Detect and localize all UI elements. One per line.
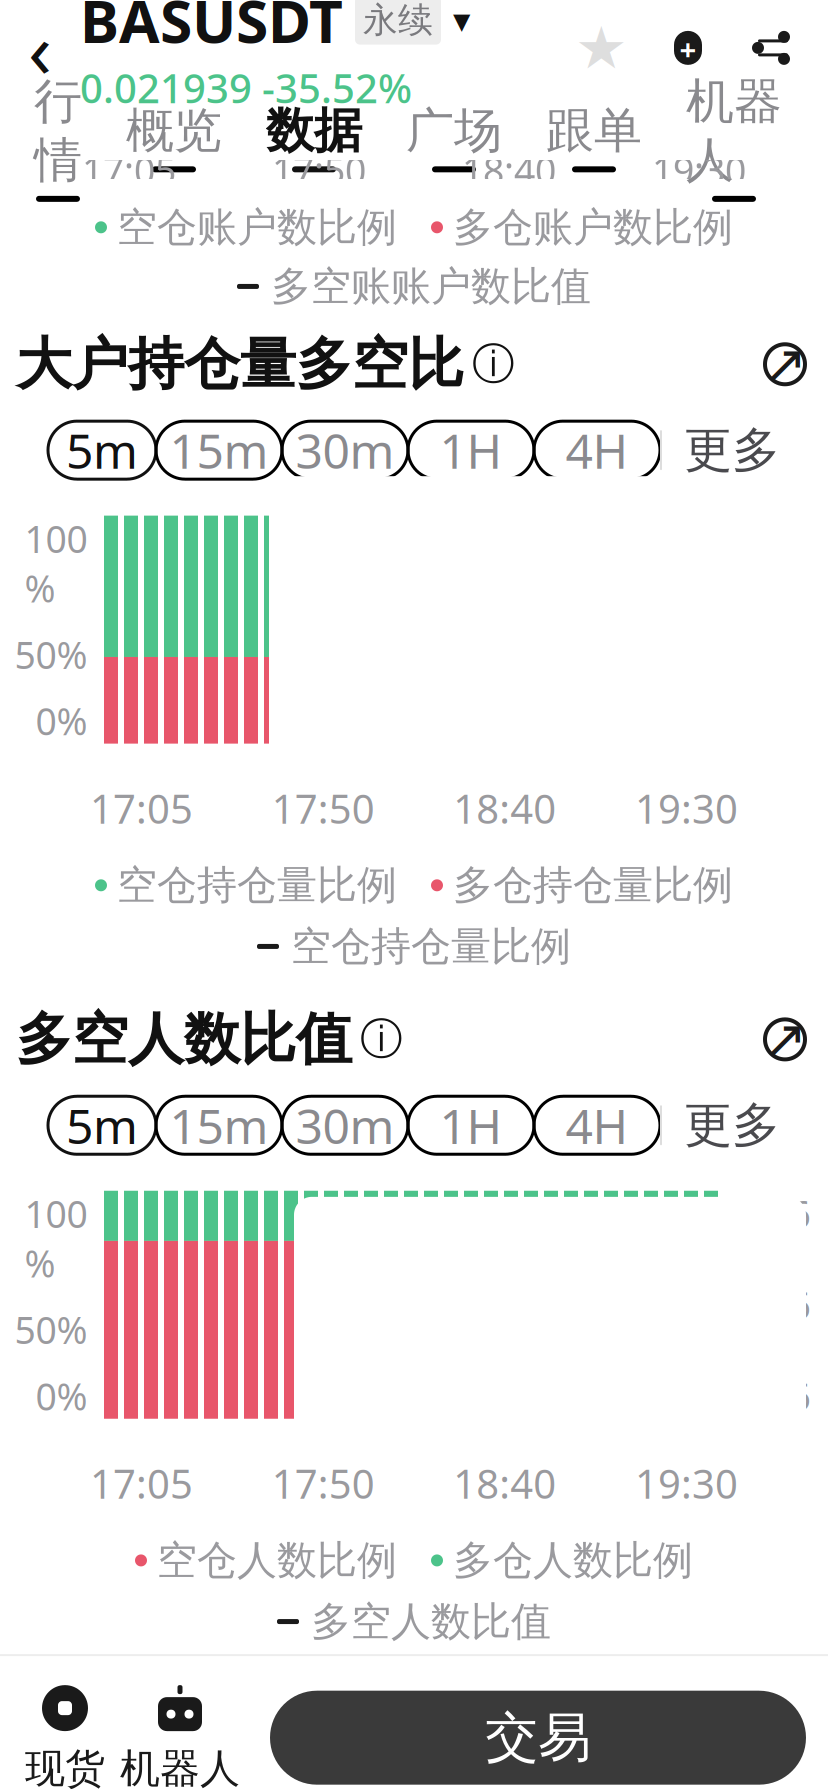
button[interactable]: Share (748, 25, 794, 71)
staticText: 17:50 (272, 145, 366, 195)
staticText: 数据 (266, 101, 362, 160)
staticText: 广场 (406, 101, 502, 160)
staticText: + (679, 29, 696, 68)
staticText: 行情 (34, 72, 82, 190)
staticText: 19:30 (652, 145, 746, 195)
staticText: 17:05 (90, 782, 193, 835)
staticText: 100% (24, 514, 87, 613)
staticText: 机器人 (686, 72, 782, 190)
button[interactable]: Alerts (668, 26, 708, 70)
button[interactable]: 数据 (244, 101, 384, 172)
button[interactable]: 30m (282, 1096, 408, 1154)
button[interactable]: 广场 (384, 101, 524, 172)
staticText: ↗ (762, 334, 807, 394)
staticText: 0% (35, 1371, 87, 1421)
button[interactable]: Share chart (758, 1012, 812, 1066)
staticText: 17:50 (272, 1457, 375, 1510)
button[interactable]: 4H (534, 421, 660, 479)
staticText: 现货 (25, 1744, 105, 1792)
staticText: 4.06 (737, 1280, 810, 1330)
staticText: 17:05 (90, 1457, 193, 1510)
staticText: 空仓账户数比例 (117, 203, 397, 252)
staticText: 更多 (684, 421, 780, 480)
staticText: 多仓人数比例 (453, 1536, 693, 1585)
staticText: 大户持仓量多空比 (16, 330, 464, 399)
button[interactable]: 5m (48, 1096, 156, 1154)
button[interactable]: 4H (534, 1096, 660, 1154)
staticText: 空仓人数比例 (157, 1536, 397, 1585)
staticText: ⓘ (472, 338, 515, 390)
staticText: 19:30 (635, 782, 738, 835)
button[interactable]: 跟单 (524, 101, 664, 172)
staticText: 100% (24, 1189, 87, 1288)
button[interactable]: 概览 (104, 101, 244, 172)
staticText: 更多 (684, 1096, 780, 1155)
staticText: 空仓持仓量比例 (291, 922, 571, 971)
staticText: BASUSDT (80, 0, 343, 59)
staticText: 5m (66, 418, 138, 482)
staticText: 空仓持仓量比例 (117, 861, 397, 910)
staticText: 跟单 (546, 101, 642, 160)
staticText: ‹ (28, 0, 52, 99)
staticText: 多空人数比值: 3.66 (320, 1435, 704, 1496)
button[interactable]: 交易 (270, 1691, 806, 1785)
button[interactable]: Info (352, 1013, 403, 1066)
staticText: 5m (66, 1093, 138, 1157)
staticText: 30m (295, 418, 394, 482)
staticText: 多空人数比值 (16, 1005, 352, 1074)
staticText: 1H (439, 418, 502, 482)
staticText: 机器人 (120, 1744, 240, 1792)
staticText: 多空账账户数比值 (271, 262, 591, 311)
button[interactable]: 机器人 (664, 72, 804, 202)
button[interactable]: 15m (156, 1096, 282, 1154)
button[interactable]: Share chart (758, 337, 812, 391)
staticText: 15m (169, 418, 268, 482)
staticText: ↗ (762, 1009, 807, 1070)
staticText: 17:05 (82, 145, 176, 195)
button[interactable]: Info (464, 338, 515, 390)
staticText: 多仓账户数比例 (453, 203, 733, 252)
button[interactable]: 更多 (662, 1096, 780, 1155)
staticText: 19:30 (635, 1457, 738, 1510)
button[interactable]: 现货 (10, 1682, 120, 1792)
staticText: 多空人数比值 (311, 1597, 551, 1646)
staticText: 17:50 (272, 782, 375, 835)
staticText: 15m (169, 1093, 268, 1157)
staticText: ★ (575, 15, 628, 81)
staticText: 概览 (126, 101, 222, 160)
staticText: 50% (14, 630, 87, 679)
button[interactable]: 1H (408, 1096, 534, 1154)
staticText: 0.021939 -35.52% (80, 61, 412, 114)
button[interactable]: 机器人 (120, 1682, 240, 1792)
staticText: 18:40 (462, 145, 556, 195)
staticText: 1H (439, 1093, 502, 1157)
button[interactable]: 行情 (12, 72, 104, 202)
staticText: 多仓持仓量比例 (453, 861, 733, 910)
button[interactable]: 30m (282, 421, 408, 479)
staticText: 30m (295, 1093, 394, 1157)
staticText: ⓘ (360, 1013, 403, 1066)
button[interactable]: 1H (408, 421, 534, 479)
staticText: 18:40 (453, 782, 556, 835)
button[interactable]: Back (8, 3, 72, 93)
staticText: ▾ (453, 1, 470, 40)
button[interactable]: 15m (156, 421, 282, 479)
staticText: 50% (14, 1305, 87, 1354)
staticText: 永续 (363, 0, 433, 42)
button[interactable]: 更多 (662, 421, 780, 480)
button[interactable]: 5m (48, 421, 156, 479)
button[interactable]: Favorite (575, 15, 628, 81)
staticText: 4H (565, 418, 628, 482)
staticText: 0% (35, 696, 87, 746)
staticText: 3.46 (737, 1371, 810, 1421)
